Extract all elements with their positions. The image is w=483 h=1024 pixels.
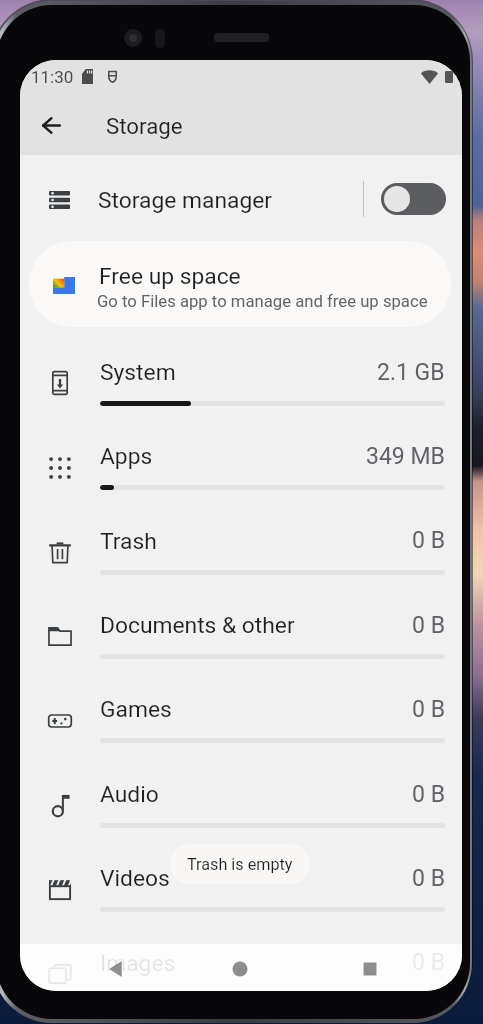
staticText: Images <box>100 950 176 977</box>
button[interactable] <box>29 241 451 327</box>
staticText: 349 MB <box>366 443 445 470</box>
staticText: Audio <box>100 781 159 808</box>
staticText: 0 B <box>412 612 445 639</box>
staticText: Apps <box>100 443 153 470</box>
staticText: 0 B <box>412 696 445 723</box>
button[interactable] <box>20 763 462 847</box>
button[interactable]: Navigate up <box>27 101 75 149</box>
staticText: Free up space <box>99 263 241 290</box>
button[interactable] <box>20 426 462 510</box>
button[interactable]: Storage manager toggle <box>381 183 446 215</box>
staticText: Trash is empty <box>187 855 293 874</box>
staticText: 0 B <box>412 949 445 976</box>
button[interactable] <box>20 510 462 594</box>
staticText: Documents & other <box>100 612 295 639</box>
button[interactable]: Recent apps <box>348 947 392 991</box>
staticText: Trash <box>100 528 157 555</box>
staticText: 11:30 <box>31 67 74 87</box>
button[interactable] <box>20 155 462 240</box>
staticText: Go to Files app to manage and free up sp… <box>97 292 428 312</box>
button[interactable] <box>20 341 462 425</box>
button[interactable]: Trash is empty <box>170 844 310 884</box>
staticText: Storage <box>106 113 183 139</box>
staticText: System <box>100 359 176 386</box>
button[interactable] <box>20 679 462 763</box>
staticText: 2.1 GB <box>377 359 445 386</box>
button[interactable] <box>20 594 462 678</box>
staticText: Videos <box>100 865 170 892</box>
staticText: 0 B <box>412 865 445 892</box>
staticText: Storage manager <box>98 187 272 214</box>
button[interactable]: Back <box>94 947 138 991</box>
staticText: 0 B <box>412 781 445 808</box>
staticText: Games <box>100 696 172 723</box>
button[interactable]: Home <box>218 947 262 991</box>
staticText: 0 B <box>412 527 445 554</box>
button[interactable] <box>20 848 462 932</box>
button[interactable] <box>20 932 462 991</box>
